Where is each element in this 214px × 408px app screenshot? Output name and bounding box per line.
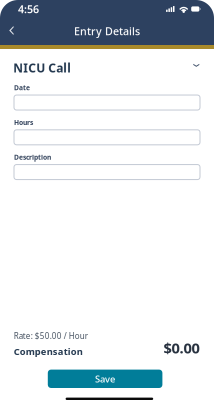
- staticText: NICU Call: [13, 60, 71, 76]
- button[interactable]: Save: [48, 370, 162, 388]
- staticText: Compensation: [14, 345, 83, 358]
- staticText: Save: [95, 373, 115, 385]
- staticText: $0.00: [163, 338, 199, 358]
- staticText: Date: [14, 83, 30, 92]
- button[interactable]: Back: [0, 21, 24, 42]
- staticText: Hours: [14, 118, 33, 127]
- button[interactable]: NICU Call: [0, 49, 214, 80]
- staticText: Rate: $50.00 / Hour: [14, 331, 88, 341]
- staticText: Description: [14, 153, 51, 162]
- staticText: Entry Details: [74, 24, 140, 38]
- staticText: 4:56: [18, 2, 39, 16]
